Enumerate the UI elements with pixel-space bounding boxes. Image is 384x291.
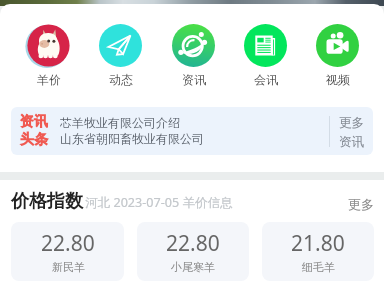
staticText: 芯羊牧业有限公司介绍	[60, 115, 180, 130]
staticText: 资讯	[20, 113, 48, 131]
staticText: 羊价	[37, 72, 61, 87]
staticText: 视频	[326, 72, 350, 87]
button[interactable]: 22.80	[137, 222, 249, 281]
staticText: 资讯	[339, 134, 364, 150]
staticText: 更多	[348, 196, 374, 212]
staticText: 新民羊	[52, 260, 85, 274]
button[interactable]: 会讯	[244, 24, 287, 87]
staticText: 资讯	[182, 72, 206, 87]
staticText: 会讯	[254, 72, 278, 87]
button[interactable]: 动态	[99, 24, 142, 87]
staticText: 22.80	[166, 229, 220, 258]
button[interactable]: 21.80	[262, 222, 374, 281]
staticText: 21.80	[291, 229, 345, 258]
button[interactable]: 更多	[348, 197, 374, 213]
button[interactable]: 更多	[330, 114, 373, 149]
staticText: 细毛羊	[302, 260, 335, 274]
staticText: 22.80	[41, 229, 95, 258]
button[interactable]: 资讯	[172, 24, 215, 87]
staticText: 更多	[339, 115, 364, 131]
button[interactable]: 22.80	[11, 222, 124, 281]
staticText: 河北 2023-07-05 羊价信息	[85, 194, 233, 211]
staticText: 价格指数	[11, 190, 83, 213]
staticText: 山东省朝阳畜牧业有限公司	[60, 131, 204, 146]
button[interactable]: 资讯	[11, 107, 373, 155]
button[interactable]: 羊价	[27, 24, 70, 87]
staticText: 头条	[20, 131, 48, 149]
staticText: 动态	[109, 72, 133, 87]
button[interactable]: 视频	[316, 24, 359, 87]
staticText: 小尾寒羊	[171, 260, 215, 274]
